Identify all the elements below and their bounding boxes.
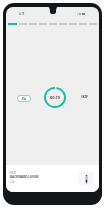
staticText: SKIP [81, 95, 89, 99]
staticText: x16 [10, 180, 15, 184]
staticText: NEXT [10, 171, 17, 175]
staticText: BACKWARD LUNGE [10, 175, 39, 179]
staticText: -10s [21, 97, 27, 101]
button[interactable]: NEXT [6, 165, 99, 192]
button[interactable]: -10s [18, 96, 30, 101]
staticText: 4:19 [19, 12, 25, 16]
button[interactable]: Pause timer [44, 87, 66, 108]
staticText: 00:19 [50, 95, 60, 100]
button[interactable]: SKIP [79, 93, 91, 101]
